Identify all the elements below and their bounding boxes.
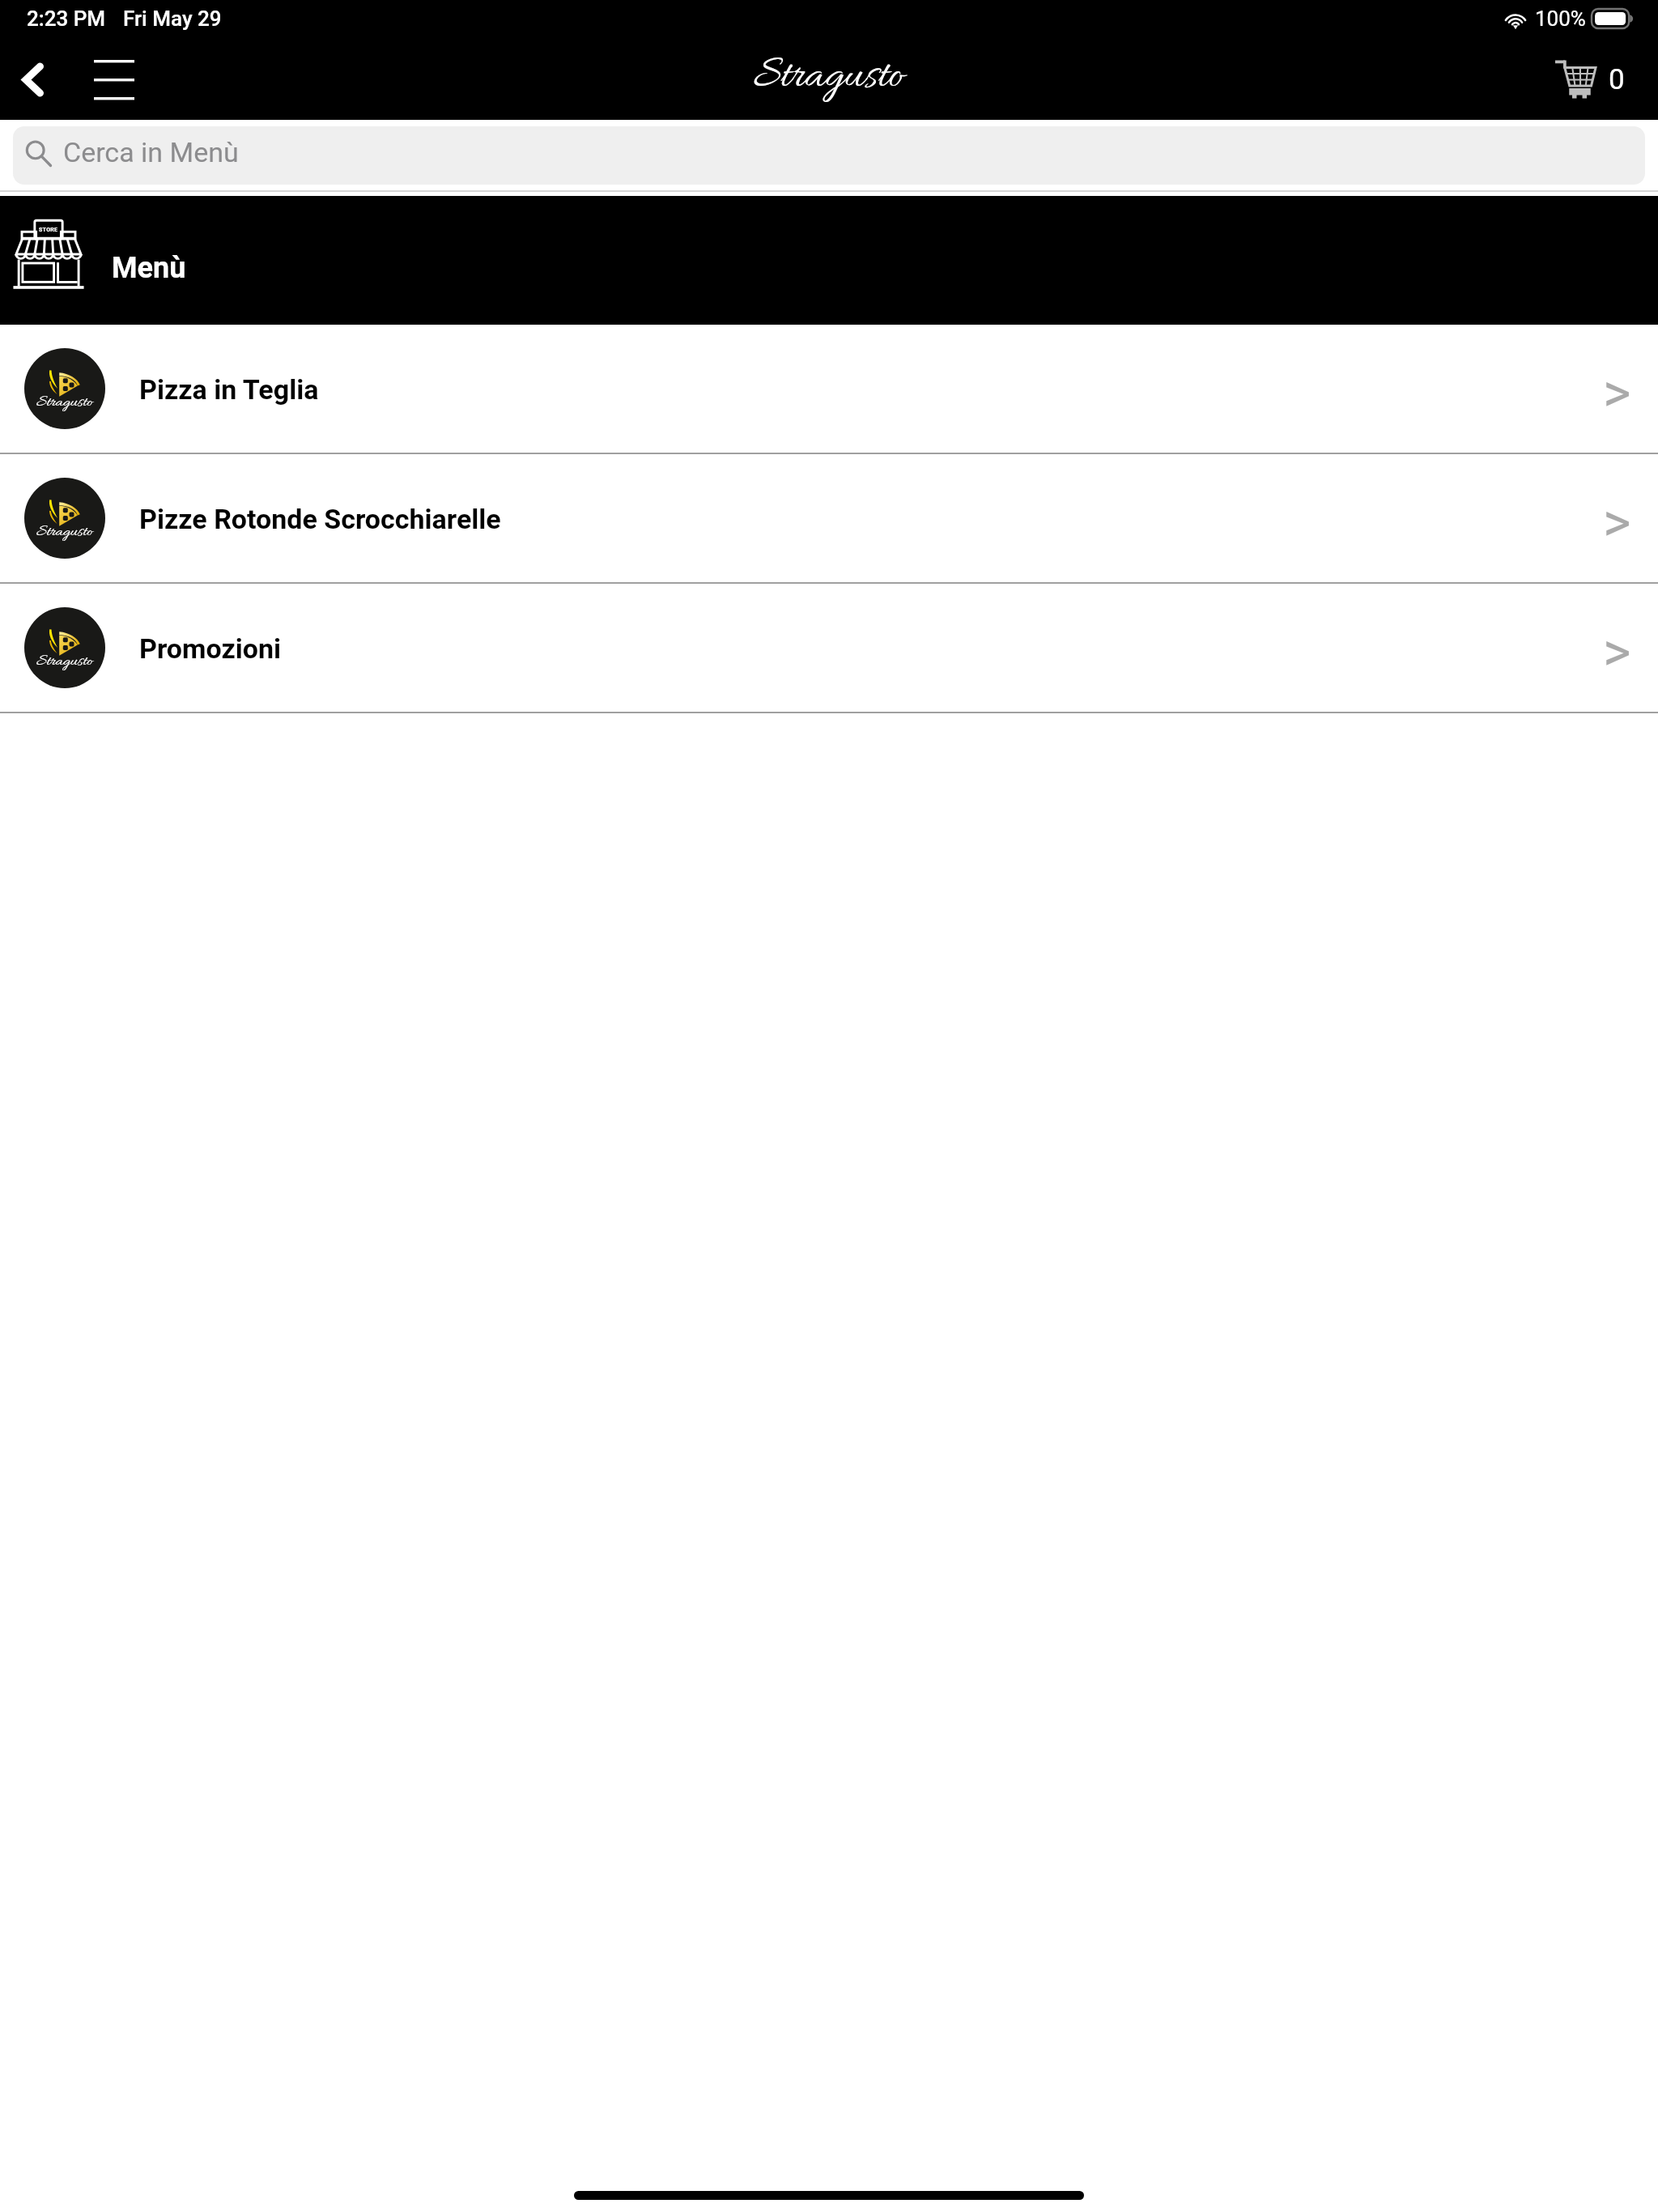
staticText: Stragusto: [754, 49, 904, 105]
staticText: Cerca in Menù: [63, 136, 239, 168]
button[interactable]: Stragusto: [0, 454, 1658, 582]
button[interactable]: STORE: [0, 196, 1658, 325]
staticText: 100%: [1535, 6, 1586, 31]
button[interactable]: Stragusto: [0, 584, 1658, 712]
button[interactable]: Back: [0, 47, 62, 120]
staticText: STORE: [39, 227, 58, 233]
staticText: Stragusto: [36, 521, 93, 542]
staticText: Pizze Rotonde Scrocchiarelle: [139, 503, 501, 535]
button[interactable]: Cerca in Menù: [13, 126, 1645, 185]
button[interactable]: Stragusto: [0, 325, 1658, 453]
staticText: Pizza in Teglia: [139, 373, 319, 406]
staticText: >: [1603, 621, 1631, 683]
staticText: >: [1603, 491, 1631, 554]
staticText: 2:23 PM: [27, 6, 106, 31]
button[interactable]: Open navigation menu: [78, 47, 151, 120]
button[interactable]: Shopping cart: [1541, 47, 1658, 120]
staticText: Stragusto: [36, 392, 93, 413]
staticText: 0: [1609, 63, 1625, 96]
staticText: Fri May 29: [123, 6, 222, 31]
staticText: Stragusto: [36, 651, 93, 672]
staticText: Menù: [112, 251, 186, 285]
staticText: >: [1603, 362, 1631, 424]
staticText: Promozioni: [139, 632, 281, 665]
